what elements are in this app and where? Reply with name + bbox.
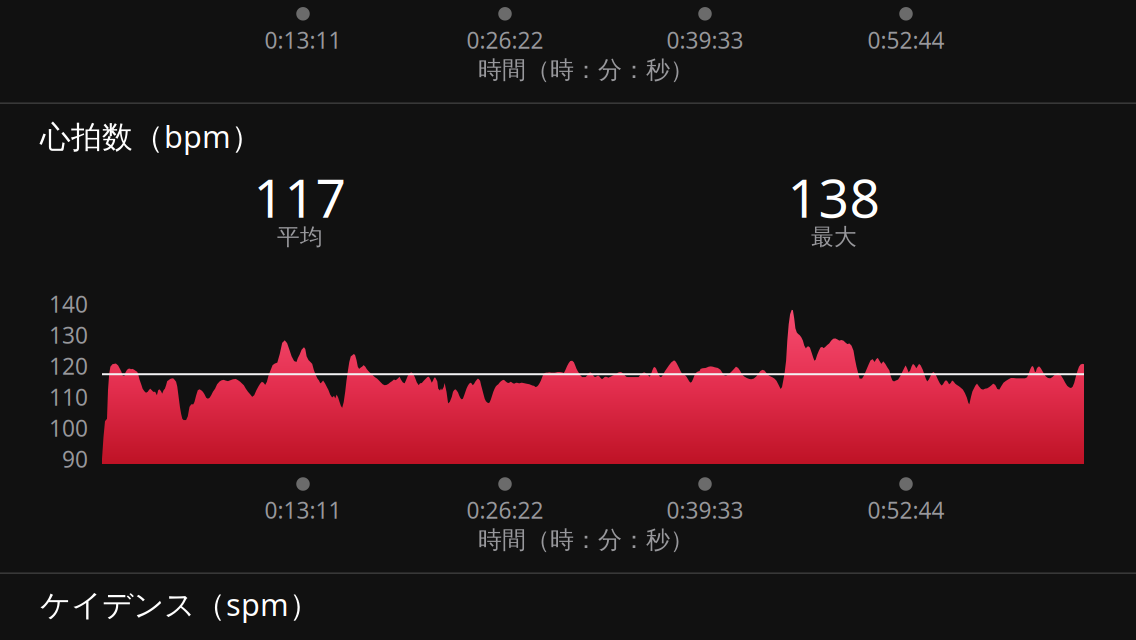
staticText: 0:52:44 [867,25,944,55]
staticText: 120 [49,351,88,381]
staticText: 0:52:44 [867,495,944,525]
staticText: 時間（時：分：秒） [478,55,694,85]
staticText: 100 [49,413,88,443]
button[interactable]: 心拍数（bpm） [0,104,1136,574]
staticText: 心拍数（bpm） [40,116,262,156]
staticText: 130 [49,320,88,350]
staticText: 0:26:22 [466,495,543,525]
button[interactable]: ケイデンス（spm） [0,574,1136,640]
staticText: 0:13:11 [264,495,341,525]
staticText: ケイデンス（spm） [40,584,320,624]
staticText: 117 [253,162,346,232]
button[interactable]: 前のグラフ [0,0,1136,103]
staticText: 最大 [811,223,857,251]
staticText: 140 [49,289,88,319]
staticText: 0:39:33 [666,495,743,525]
staticText: 90 [62,444,88,474]
staticText: 0:39:33 [666,25,743,55]
staticText: 110 [49,382,88,412]
staticText: 0:13:11 [264,25,341,55]
staticText: 平均 [277,223,323,251]
staticText: 138 [787,162,880,232]
staticText: 0:26:22 [466,25,543,55]
staticText: 時間（時：分：秒） [478,525,694,555]
